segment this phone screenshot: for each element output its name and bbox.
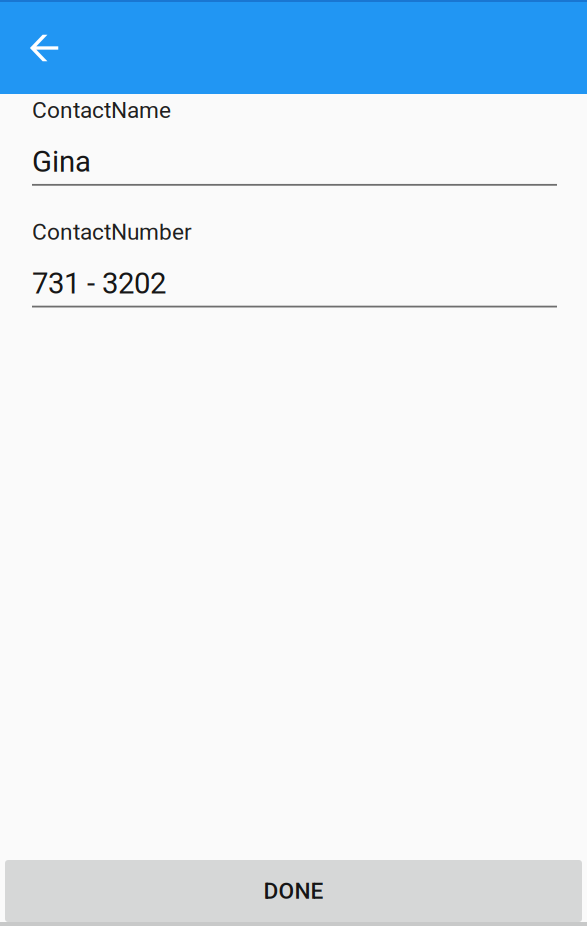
button[interactable]: DONE — [5, 860, 582, 922]
staticText: ContactNumber — [32, 219, 192, 245]
button[interactable]: ContactName — [32, 97, 557, 186]
button[interactable]: ContactNumber — [32, 219, 557, 307]
staticText: ContactName — [32, 97, 171, 124]
staticText: Gina — [32, 145, 91, 179]
staticText: DONE — [263, 878, 323, 904]
button[interactable]: Back — [17, 20, 73, 76]
staticText: 731 - 3202 — [32, 266, 166, 301]
